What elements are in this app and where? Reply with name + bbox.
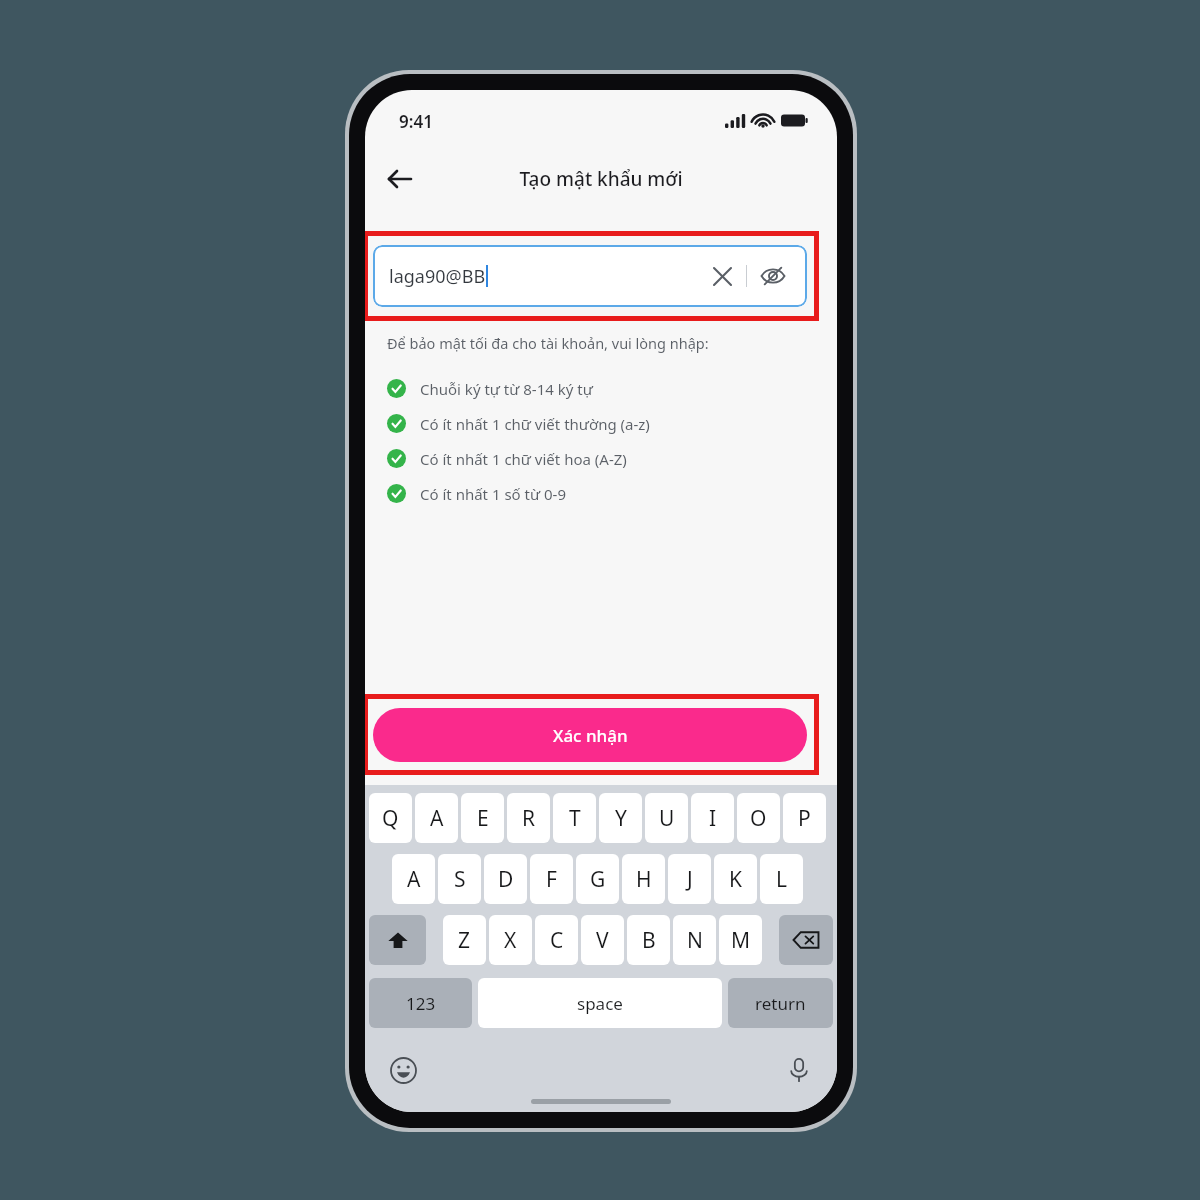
button[interactable]: Xác nhận <box>373 708 807 762</box>
staticText: Chuỗi ký tự từ 8-14 ký tự <box>420 379 593 399</box>
staticText: laga90@BB <box>389 264 486 289</box>
button[interactable]: J <box>668 854 711 904</box>
button[interactable]: S <box>438 854 481 904</box>
button[interactable]: U <box>645 793 688 843</box>
staticText: D <box>498 865 514 894</box>
staticText: Có ít nhất 1 chữ viết thường (a-z) <box>420 414 650 434</box>
staticText: V <box>596 926 609 955</box>
button[interactable]: return <box>728 978 833 1028</box>
staticText: Z <box>458 926 471 955</box>
button[interactable]: Voice input <box>779 1050 819 1090</box>
button[interactable]: A <box>415 793 458 843</box>
staticText: Q <box>382 804 399 833</box>
button[interactable]: B <box>627 915 670 965</box>
button[interactable]: P <box>783 793 826 843</box>
button[interactable]: N <box>673 915 716 965</box>
staticText: S <box>454 865 466 894</box>
staticText: Để bảo mật tối đa cho tài khoản, vui lòn… <box>387 333 709 353</box>
button[interactable]: Shift <box>369 915 426 965</box>
staticText: F <box>546 865 557 894</box>
button[interactable]: 123 <box>369 978 472 1028</box>
staticText: E <box>477 804 489 833</box>
staticText: P <box>798 804 811 833</box>
button[interactable]: Clear <box>705 259 739 293</box>
staticText: L <box>776 865 788 894</box>
staticText: A <box>407 865 421 894</box>
staticText: Tạo mật khẩu mới <box>365 166 837 192</box>
staticText: T <box>569 804 581 833</box>
button[interactable]: K <box>714 854 757 904</box>
button[interactable]: T <box>553 793 596 843</box>
button[interactable]: Emoji <box>383 1050 423 1090</box>
staticText: U <box>659 804 675 833</box>
staticText: space <box>577 992 623 1015</box>
staticText: O <box>750 804 767 833</box>
staticText: H <box>636 865 652 894</box>
button[interactable]: laga90@BB <box>373 245 807 307</box>
button[interactable]: Backspace <box>779 915 833 965</box>
staticText: K <box>729 865 742 894</box>
staticText: Xác nhận <box>553 724 628 747</box>
staticText: A <box>430 804 444 833</box>
staticText: X <box>504 926 517 955</box>
button[interactable]: L <box>760 854 803 904</box>
button[interactable]: E <box>461 793 504 843</box>
staticText: R <box>522 804 536 833</box>
staticText: N <box>687 926 703 955</box>
staticText: 9:41 <box>399 110 433 133</box>
button[interactable]: space <box>478 978 722 1028</box>
button[interactable]: C <box>535 915 578 965</box>
button[interactable]: M <box>719 915 762 965</box>
button[interactable]: H <box>622 854 665 904</box>
staticText: C <box>550 926 564 955</box>
button[interactable]: O <box>737 793 780 843</box>
staticText: 123 <box>406 992 436 1015</box>
button[interactable]: X <box>489 915 532 965</box>
button[interactable]: G <box>576 854 619 904</box>
button[interactable]: Q <box>369 793 412 843</box>
button[interactable]: I <box>691 793 734 843</box>
staticText: G <box>590 865 606 894</box>
staticText: M <box>731 926 751 955</box>
staticText: J <box>687 865 693 894</box>
button[interactable]: V <box>581 915 624 965</box>
button[interactable]: F <box>530 854 573 904</box>
staticText: Có ít nhất 1 chữ viết hoa (A-Z) <box>420 449 627 469</box>
button[interactable]: A <box>392 854 435 904</box>
button[interactable]: D <box>484 854 527 904</box>
button[interactable]: Back <box>373 152 427 206</box>
staticText: I <box>709 804 717 833</box>
staticText: return <box>755 992 806 1015</box>
staticText: Y <box>615 804 627 833</box>
button[interactable]: Show password <box>755 258 791 294</box>
button[interactable]: Z <box>443 915 486 965</box>
staticText: Có ít nhất 1 số từ 0-9 <box>420 484 566 504</box>
staticText: B <box>642 926 656 955</box>
button[interactable]: Y <box>599 793 642 843</box>
button[interactable]: R <box>507 793 550 843</box>
